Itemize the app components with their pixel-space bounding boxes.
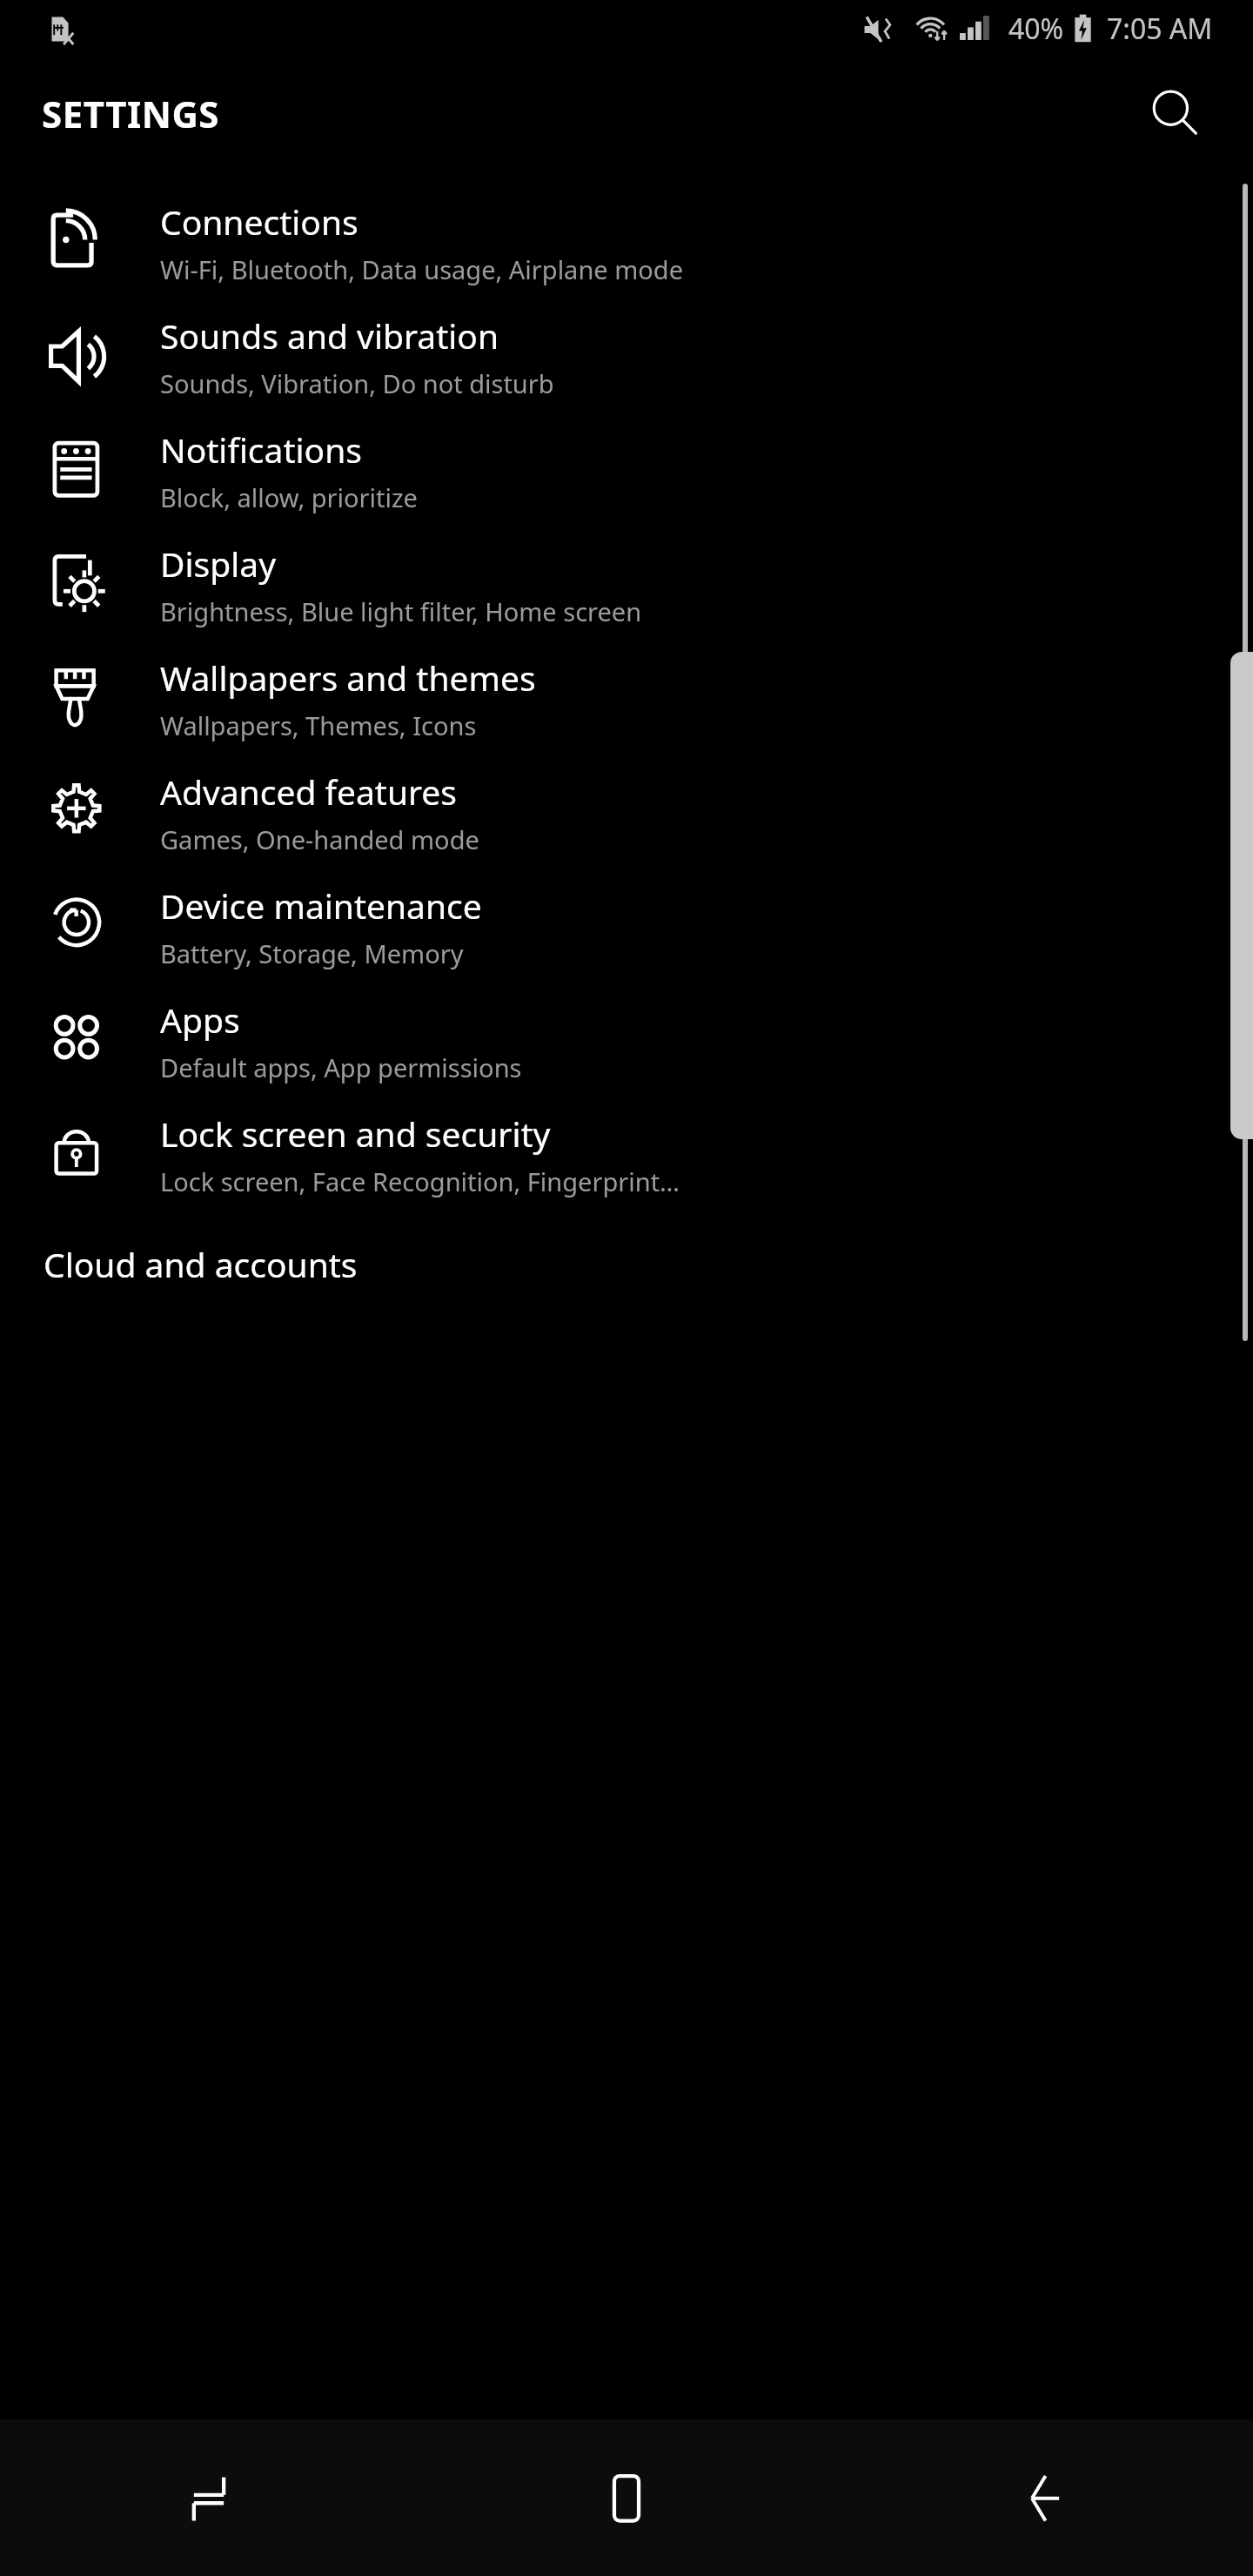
staticText: Brightness, Blue light filter, Home scre… [160,594,642,628]
button[interactable]: Lock screen and security [0,1097,1253,1211]
staticText: Sounds, Vibration, Do not disturb [160,366,554,400]
staticText: Wi-Fi, Bluetooth, Data usage, Airplane m… [160,252,684,286]
staticText: Wallpapers, Themes, Icons [160,708,477,742]
staticText: Default apps, App permissions [160,1050,522,1084]
button[interactable]: Cloud and accounts [0,1211,1253,1316]
button[interactable]: Sounds and vibration [0,299,1253,413]
staticText: Connections [160,198,358,245]
button[interactable]: Advanced features [0,755,1253,869]
button[interactable]: Recents [0,2419,418,2576]
staticText: 7:05 AM [1107,10,1213,48]
button[interactable]: Search [1131,70,1218,157]
button[interactable]: Apps [0,983,1253,1097]
button[interactable]: Display [0,527,1253,641]
staticText: 40% [1008,10,1064,48]
button[interactable]: Device maintenance [0,869,1253,983]
staticText: Cloud and accounts [44,1241,358,1287]
button[interactable]: Wallpapers and themes [0,641,1253,755]
staticText: Advanced features [160,768,458,815]
staticText: Sounds and vibration [160,312,499,359]
button[interactable]: Back [835,2419,1253,2576]
staticText: Battery, Storage, Memory [160,936,464,970]
staticText: Wallpapers and themes [160,654,536,701]
button[interactable]: Home [418,2419,835,2576]
button[interactable]: Notifications [0,413,1253,527]
staticText: Block, allow, prioritize [160,480,418,514]
staticText: Apps [160,996,240,1043]
staticText: Lock screen and security [160,1110,551,1157]
staticText: Device maintenance [160,882,482,929]
staticText: SETTINGS [42,89,220,138]
staticText: Lock screen, Face Recognition, Fingerpri… [160,1164,680,1198]
staticText: Display [160,540,277,587]
button[interactable]: Connections [0,185,1253,299]
staticText: Notifications [160,426,362,473]
staticText: Games, One-handed mode [160,822,479,856]
